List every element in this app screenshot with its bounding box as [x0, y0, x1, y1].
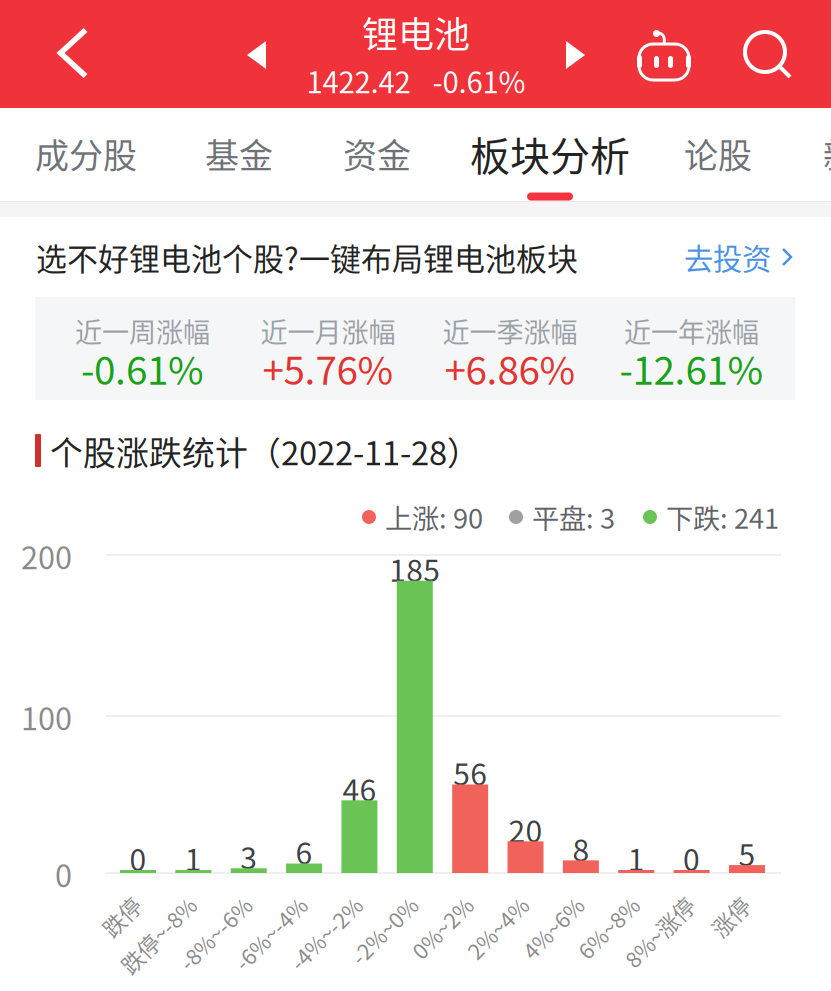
button[interactable]: Search [725, 12, 813, 100]
staticText: 6 [296, 830, 313, 873]
staticText: -2%~0% [322, 888, 406, 920]
button[interactable]: 论股 [618, 108, 818, 201]
staticText: -8%~-6% [148, 888, 240, 920]
staticText: 近一年涨幅 [624, 311, 759, 350]
staticText: 近一月涨幅 [260, 311, 395, 350]
staticText: 个股涨跌统计（2022-11-28） [50, 427, 480, 475]
staticText: 资金 [343, 129, 411, 178]
staticText: 新股 [823, 129, 831, 178]
button[interactable]: Assistant [620, 11, 708, 99]
button[interactable]: Previous [225, 12, 289, 98]
staticText: 6%~8% [551, 888, 627, 920]
staticText: 0 [55, 852, 72, 896]
staticText: -0.61% [81, 340, 204, 396]
staticText: 20 [508, 808, 542, 851]
staticText: 1422.42 [306, 59, 410, 102]
button[interactable]: Next [544, 12, 608, 98]
staticText: 基金 [205, 129, 273, 178]
staticText: 0 [683, 836, 700, 880]
staticText: 去投资 [684, 236, 771, 278]
staticText: 近一季涨幅 [442, 311, 577, 350]
staticText: 5 [738, 831, 755, 875]
button[interactable]: 板块分析 [450, 108, 650, 201]
button[interactable]: 成分股 [0, 108, 186, 201]
staticText: 185 [389, 547, 440, 590]
staticText: 8%~涨停 [595, 888, 683, 920]
staticText: 56 [453, 751, 487, 794]
staticText: 2%~4% [440, 888, 516, 920]
staticText: 200 [21, 534, 72, 578]
staticText: 下跌: 241 [666, 497, 779, 537]
button[interactable]: 选不好锂电池个股?一键布局锂电池板块 [0, 217, 831, 297]
button[interactable]: 资金 [277, 108, 477, 201]
staticText: 平盘: 3 [532, 497, 615, 537]
staticText: -4%~-2% [258, 888, 350, 920]
button[interactable]: 新股 [757, 108, 831, 201]
staticText: -0.61% [432, 59, 525, 102]
staticText: 板块分析 [470, 124, 630, 182]
staticText: 3 [240, 834, 257, 878]
staticText: 0%~2% [385, 888, 461, 920]
staticText: 近一周涨幅 [75, 311, 210, 350]
staticText: 论股 [684, 129, 752, 178]
staticText: 8 [572, 827, 589, 870]
staticText: 跌停~-8% [88, 888, 184, 920]
staticText: +5.76% [262, 340, 393, 396]
staticText: 选不好锂电池个股?一键布局锂电池板块 [36, 235, 578, 279]
staticText: 上涨: 90 [385, 497, 483, 537]
staticText: 成分股 [35, 129, 137, 178]
staticText: -12.61% [619, 340, 763, 396]
button[interactable]: Back [27, 1, 119, 105]
staticText: 涨停 [694, 888, 738, 920]
staticText: 跌停 [85, 888, 129, 920]
staticText: +6.86% [444, 340, 575, 396]
staticText: 100 [21, 695, 72, 739]
staticText: 46 [342, 767, 376, 810]
button[interactable]: 基金 [139, 108, 339, 201]
staticText: 锂电池 [362, 6, 470, 58]
staticText: 0 [129, 836, 146, 880]
staticText: -6%~-4% [203, 888, 295, 920]
staticText: 1 [185, 836, 202, 880]
staticText: 1 [628, 836, 645, 880]
staticText: 4%~6% [496, 888, 572, 920]
